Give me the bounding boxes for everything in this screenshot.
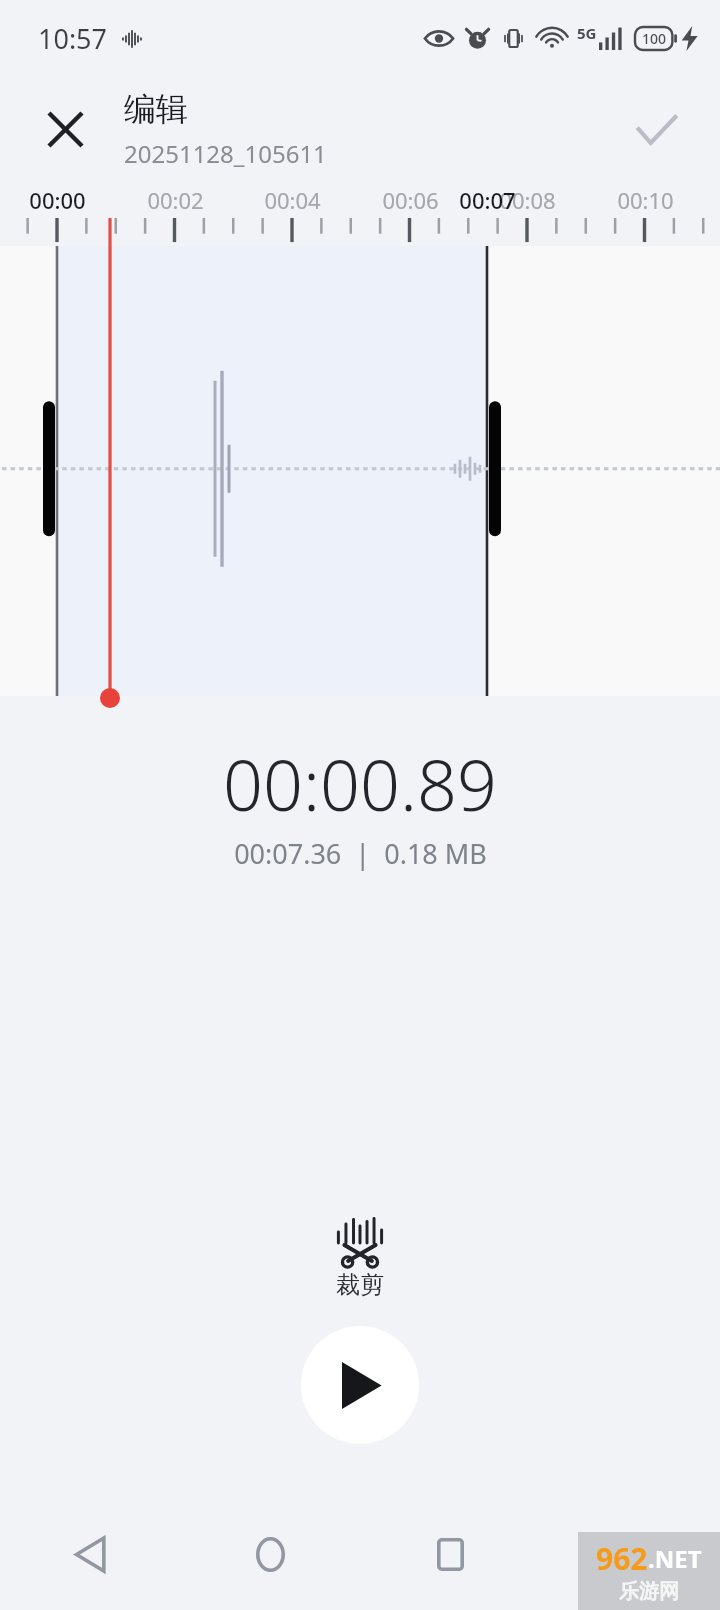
staticText: 00:06 [382,185,439,215]
button[interactable] [0,246,720,696]
button[interactable]: Confirm [618,90,696,168]
staticText: 00:04 [264,185,321,215]
button[interactable]: Close [26,90,104,168]
staticText: .NET [648,1542,702,1575]
staticText: 00:07.36 | 0.18 MB [234,835,487,872]
staticText: 00:02 [147,185,204,215]
staticText: 00:00.89 [223,736,497,831]
staticText: 00:00 [29,185,86,215]
button[interactable]: Home [180,1498,360,1610]
button[interactable]: Back [0,1498,180,1610]
staticText: 00:08 [499,185,556,215]
staticText: 裁剪 [336,1270,384,1300]
staticText: 100 [642,29,667,48]
button[interactable]: Recents [360,1498,540,1610]
staticText: 5G [577,23,597,43]
button[interactable]: Play [301,1326,419,1444]
staticText: 962 [596,1538,648,1579]
staticText: 00:10 [617,185,674,215]
staticText: 00:07 [459,185,516,215]
button[interactable]: 裁剪 [313,1211,407,1306]
staticText: 编辑 [124,89,188,129]
staticText: 20251128_105611 [124,137,327,170]
staticText: 乐游网 [619,1579,679,1604]
staticText: 10:57 [38,20,108,57]
